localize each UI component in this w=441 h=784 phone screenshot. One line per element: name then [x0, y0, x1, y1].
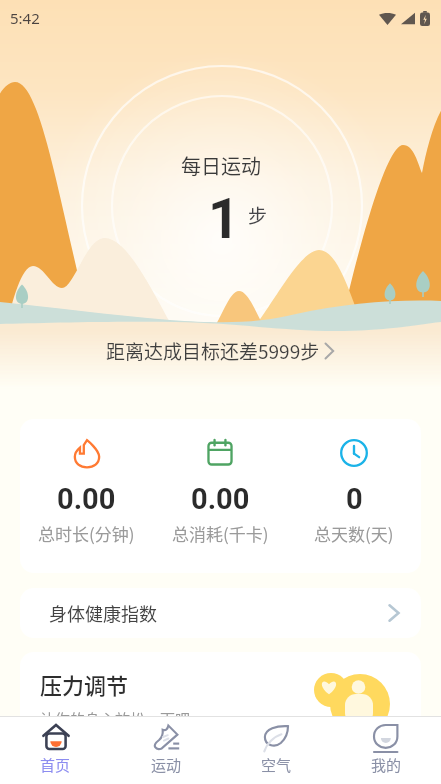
- staticText: 我的: [371, 754, 402, 776]
- button[interactable]: 我的: [331, 722, 441, 784]
- staticText: 身体健康指数: [49, 600, 157, 626]
- staticText: 1: [208, 187, 240, 251]
- staticText: 首页: [40, 754, 71, 776]
- staticText: 空气: [261, 754, 292, 776]
- staticText: 步: [248, 201, 268, 229]
- staticText: 总消耗(千卡): [172, 521, 269, 546]
- other: 运动: [151, 722, 181, 752]
- button[interactable]: 0.00: [153, 437, 287, 546]
- staticText: 5:42: [10, 8, 40, 28]
- button[interactable]: 空气: [221, 722, 331, 784]
- button[interactable]: 0: [287, 437, 421, 546]
- button[interactable]: 距离达成目标还差5999步: [106, 337, 336, 365]
- staticText: 距离达成目标还差5999步: [106, 337, 320, 365]
- other: 我的: [371, 722, 401, 752]
- other: 空气: [261, 722, 291, 752]
- staticText: 压力调节: [40, 668, 129, 700]
- staticText: 0.00: [191, 482, 250, 516]
- button[interactable]: 压力调节: [20, 652, 421, 762]
- staticText: 每日运动: [181, 151, 261, 180]
- staticText: 总天数(天): [314, 521, 394, 546]
- button[interactable]: 身体健康指数: [20, 588, 421, 638]
- staticText: 运动: [151, 754, 182, 776]
- button[interactable]: 运动: [111, 722, 221, 784]
- staticText: 总时长(分钟): [38, 521, 135, 546]
- staticText: 0.00: [57, 482, 116, 516]
- other: 首页: [41, 722, 71, 752]
- staticText: 0: [346, 482, 363, 516]
- staticText: 让你的身心放松一下吧: [40, 708, 191, 730]
- button[interactable]: 0.00: [20, 437, 153, 546]
- button[interactable]: 首页: [0, 722, 111, 784]
